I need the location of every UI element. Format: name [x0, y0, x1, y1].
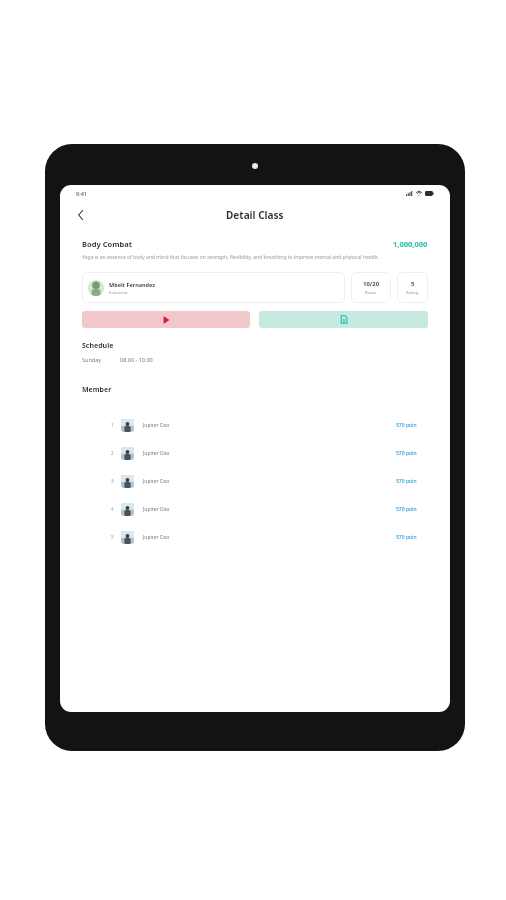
staticText: Sunday: [82, 356, 102, 363]
staticText: Instructor: [109, 290, 128, 295]
button[interactable]: 3: [60, 467, 450, 495]
staticText: Jupiter Oxo: [143, 506, 170, 513]
button[interactable]: 5: [397, 272, 428, 303]
button[interactable]: 5: [60, 523, 450, 551]
staticText: 4: [111, 506, 114, 512]
staticText: 5: [411, 280, 415, 288]
staticText: 3: [111, 478, 114, 484]
staticText: 570 poin: [396, 534, 417, 541]
staticText: Jupiter Oxo: [143, 478, 170, 485]
staticText: 1: [111, 422, 114, 428]
button[interactable]: 4: [60, 495, 450, 523]
button[interactable]: Mbelt Fernandez: [82, 272, 345, 303]
staticText: Jupiter Oxo: [143, 534, 170, 541]
button[interactable]: 1: [60, 411, 450, 439]
staticText: 5: [111, 534, 114, 540]
staticText: 1,000,000: [393, 239, 428, 249]
staticText: Kuota: [365, 290, 377, 295]
staticText: 08.00 - 10.00: [120, 356, 153, 363]
button[interactable]: 10/20: [351, 272, 391, 303]
staticText: 10/20: [363, 280, 380, 288]
staticText: 570 poin: [396, 478, 417, 485]
button[interactable]: Document: [259, 311, 428, 328]
staticText: 9:41: [76, 190, 87, 197]
staticText: Mbelt Fernandez: [109, 281, 156, 288]
button[interactable]: 2: [60, 439, 450, 467]
staticText: 570 poin: [396, 422, 417, 429]
staticText: Member: [82, 385, 112, 395]
staticText: Body Combat: [82, 239, 132, 249]
staticText: 570 poin: [396, 450, 417, 457]
staticText: Jupiter Oxo: [143, 450, 170, 457]
staticText: Detail Class: [226, 208, 284, 222]
staticText: Yoga is an essence of body and mind that…: [82, 254, 404, 261]
staticText: Jupiter Oxo: [143, 422, 170, 429]
staticText: 2: [111, 450, 114, 456]
staticText: 570 poin: [396, 506, 417, 513]
staticText: Rating: [406, 290, 419, 295]
button[interactable]: Back: [72, 206, 90, 224]
staticText: Schedule: [82, 341, 114, 351]
button[interactable]: Play video: [82, 311, 250, 328]
